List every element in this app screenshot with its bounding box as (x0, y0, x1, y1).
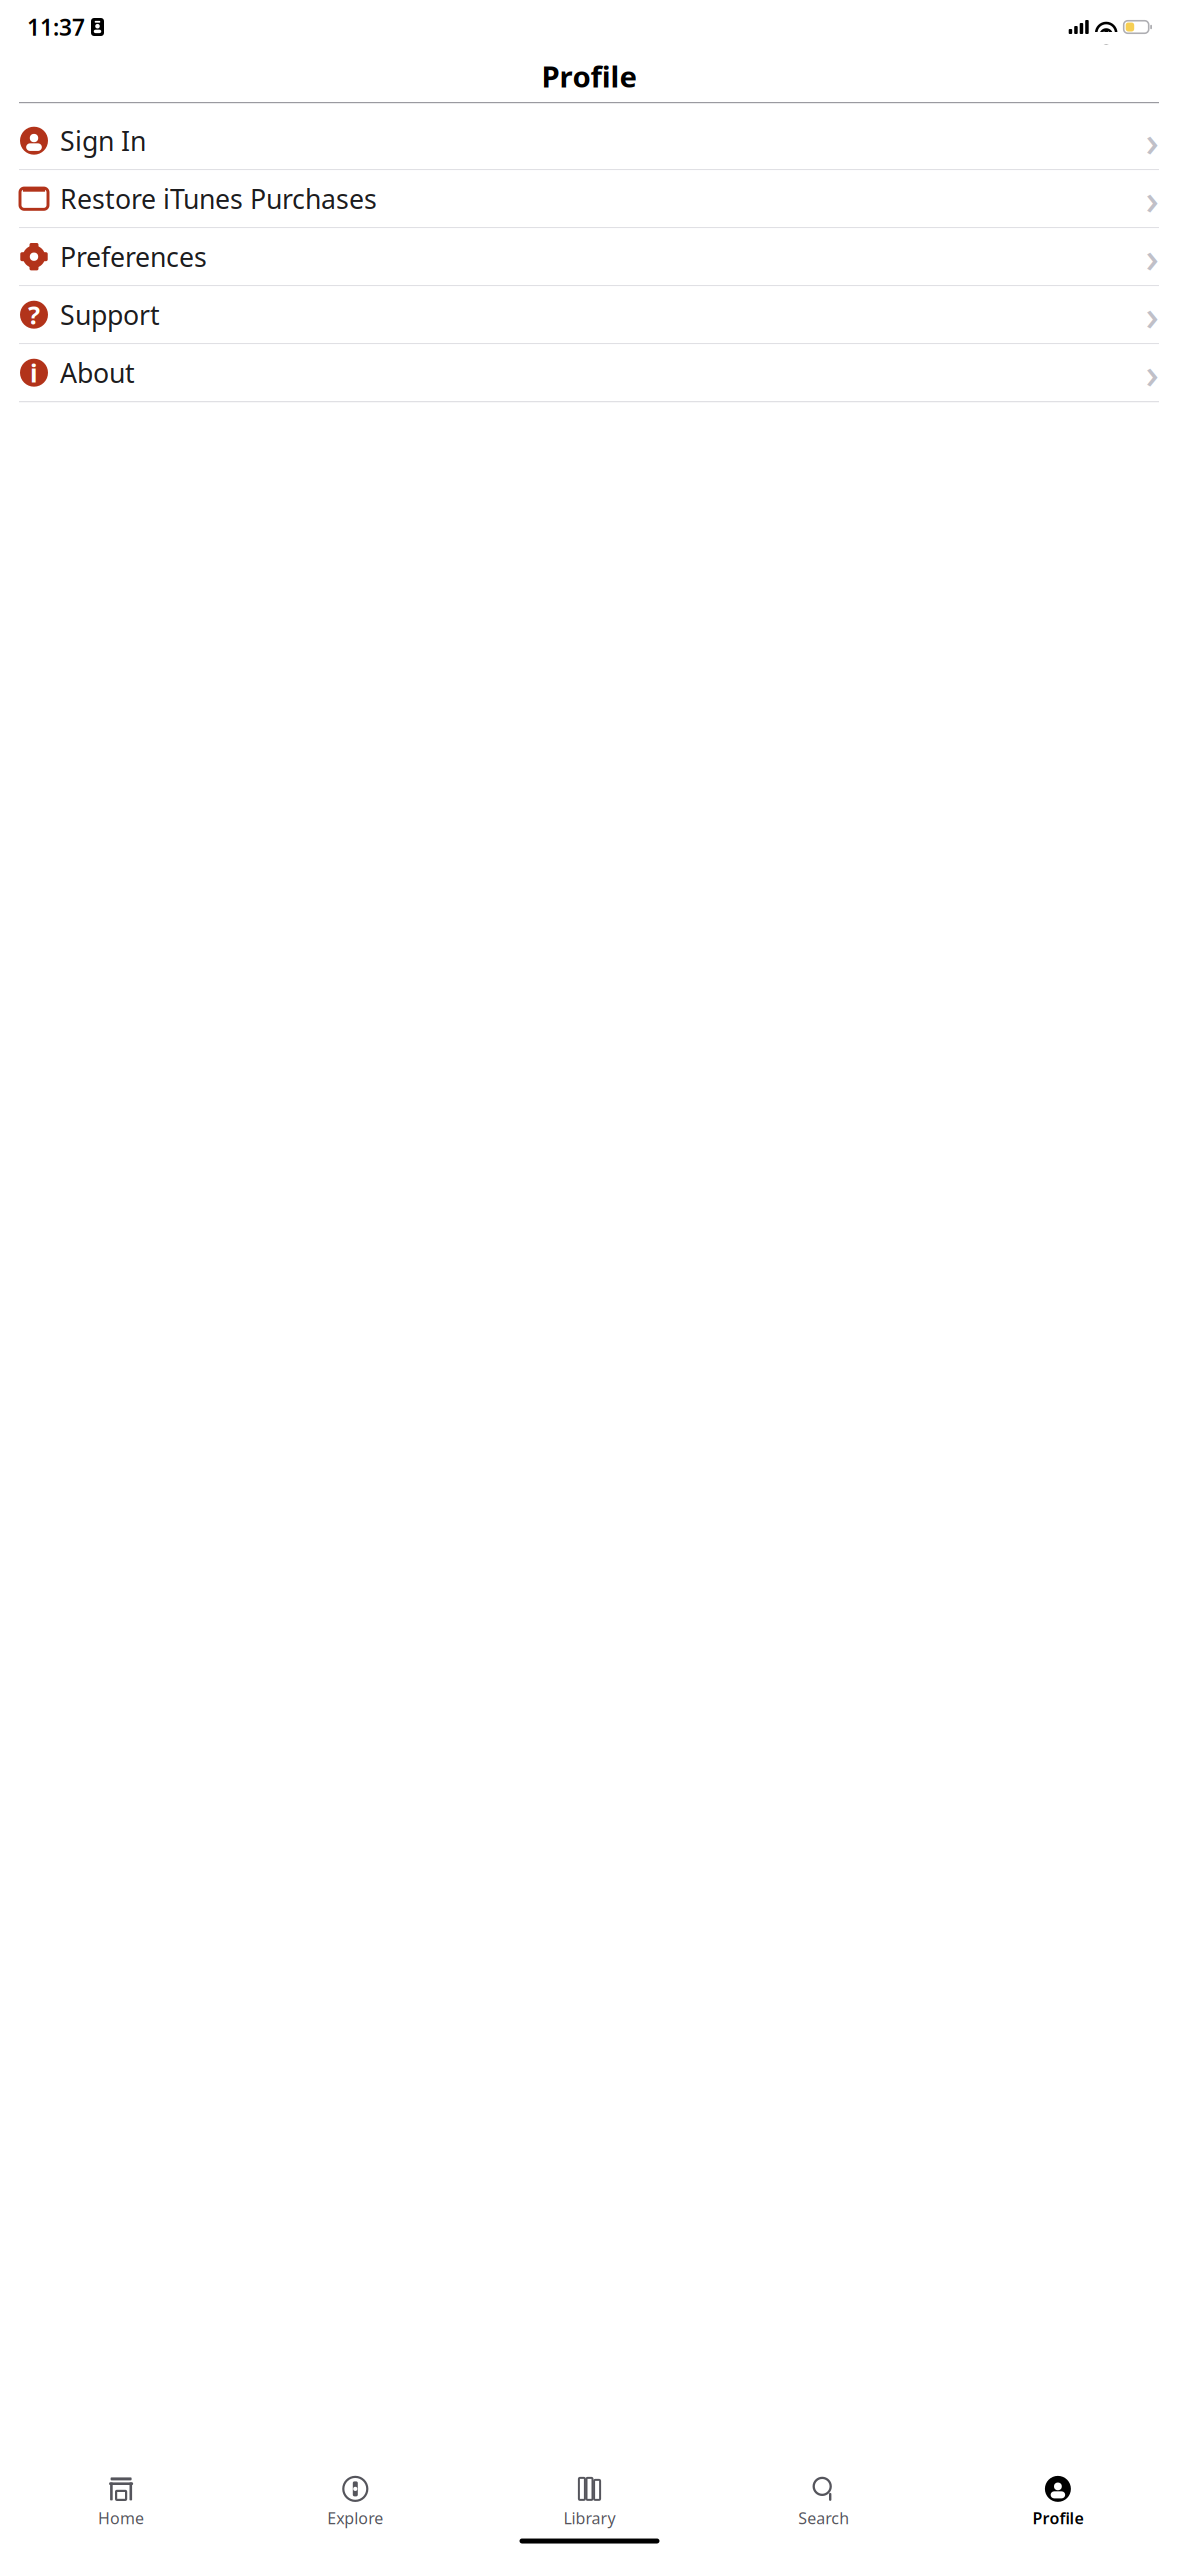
staticText: Support (60, 297, 160, 332)
button[interactable]: Search (707, 2469, 941, 2529)
staticText: Profile (541, 56, 637, 95)
staticText: Search (798, 2507, 849, 2529)
button[interactable]: ? (0, 286, 1179, 343)
staticText: › (1145, 345, 1158, 400)
staticText: Preferences (60, 239, 207, 274)
staticText: Sign In (60, 123, 146, 158)
staticText: 11:37 (27, 12, 85, 42)
staticText: i (30, 356, 38, 389)
staticText: Restore iTunes Purchases (60, 181, 377, 216)
staticText: Library (563, 2507, 615, 2529)
button[interactable]: Sign In (0, 112, 1179, 169)
button[interactable]: Explore (238, 2469, 472, 2529)
button[interactable]: Restore iTunes Purchases (0, 170, 1179, 227)
staticText: › (1145, 171, 1158, 226)
button[interactable]: i (0, 344, 1179, 401)
staticText: › (1145, 229, 1158, 284)
staticText: Explore (327, 2507, 383, 2529)
button[interactable]: Library (472, 2469, 707, 2529)
staticText: Home (98, 2507, 144, 2529)
button[interactable]: Profile (941, 2469, 1175, 2529)
staticText: ? (28, 298, 40, 331)
staticText: About (60, 355, 135, 390)
button[interactable]: Home (4, 2469, 238, 2529)
staticText: › (1145, 113, 1158, 168)
staticText: › (1145, 287, 1158, 342)
staticText: Profile (1032, 2507, 1083, 2529)
button[interactable]: Preferences (0, 228, 1179, 285)
